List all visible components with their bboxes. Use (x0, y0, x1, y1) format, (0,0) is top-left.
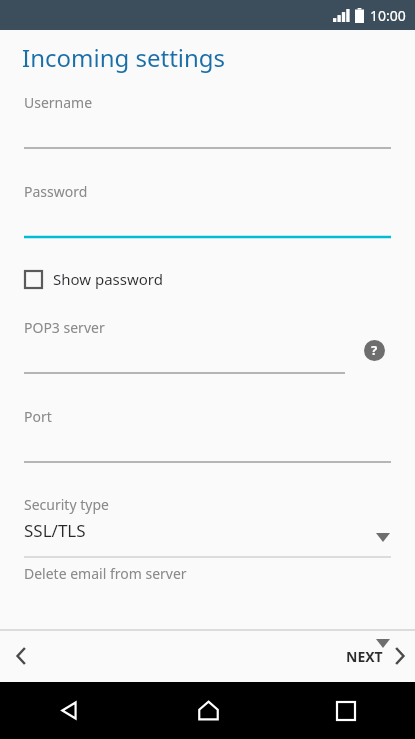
staticText: SSL/TLS (24, 519, 86, 542)
button[interactable]: Port (0, 398, 415, 487)
staticText: Username (24, 93, 93, 112)
button[interactable]: Username (0, 84, 415, 173)
staticText: Incoming settings (22, 41, 226, 74)
staticText: NEXT (346, 647, 383, 666)
staticText: ? (371, 341, 378, 359)
button[interactable]: Show password (0, 262, 415, 296)
button[interactable]: Home (139, 682, 277, 739)
button[interactable]: Previous (0, 634, 44, 678)
button[interactable]: Delete email from server (0, 558, 415, 598)
staticText: Security type (24, 495, 109, 514)
button[interactable]: NEXT (346, 632, 415, 680)
staticText: Password (24, 182, 88, 201)
staticText: POP3 server (24, 318, 105, 337)
staticText: Show password (53, 269, 163, 289)
staticText: Delete email from server (24, 564, 187, 583)
button[interactable]: Back (0, 682, 139, 739)
button[interactable]: Security type (0, 491, 415, 558)
staticText: 10:00 (370, 6, 406, 25)
button[interactable]: Recent apps (277, 682, 415, 739)
staticText: Port (24, 407, 52, 426)
button[interactable]: POP3 server (0, 309, 415, 398)
button[interactable]: Help (362, 338, 386, 362)
button[interactable]: Password (0, 173, 415, 262)
